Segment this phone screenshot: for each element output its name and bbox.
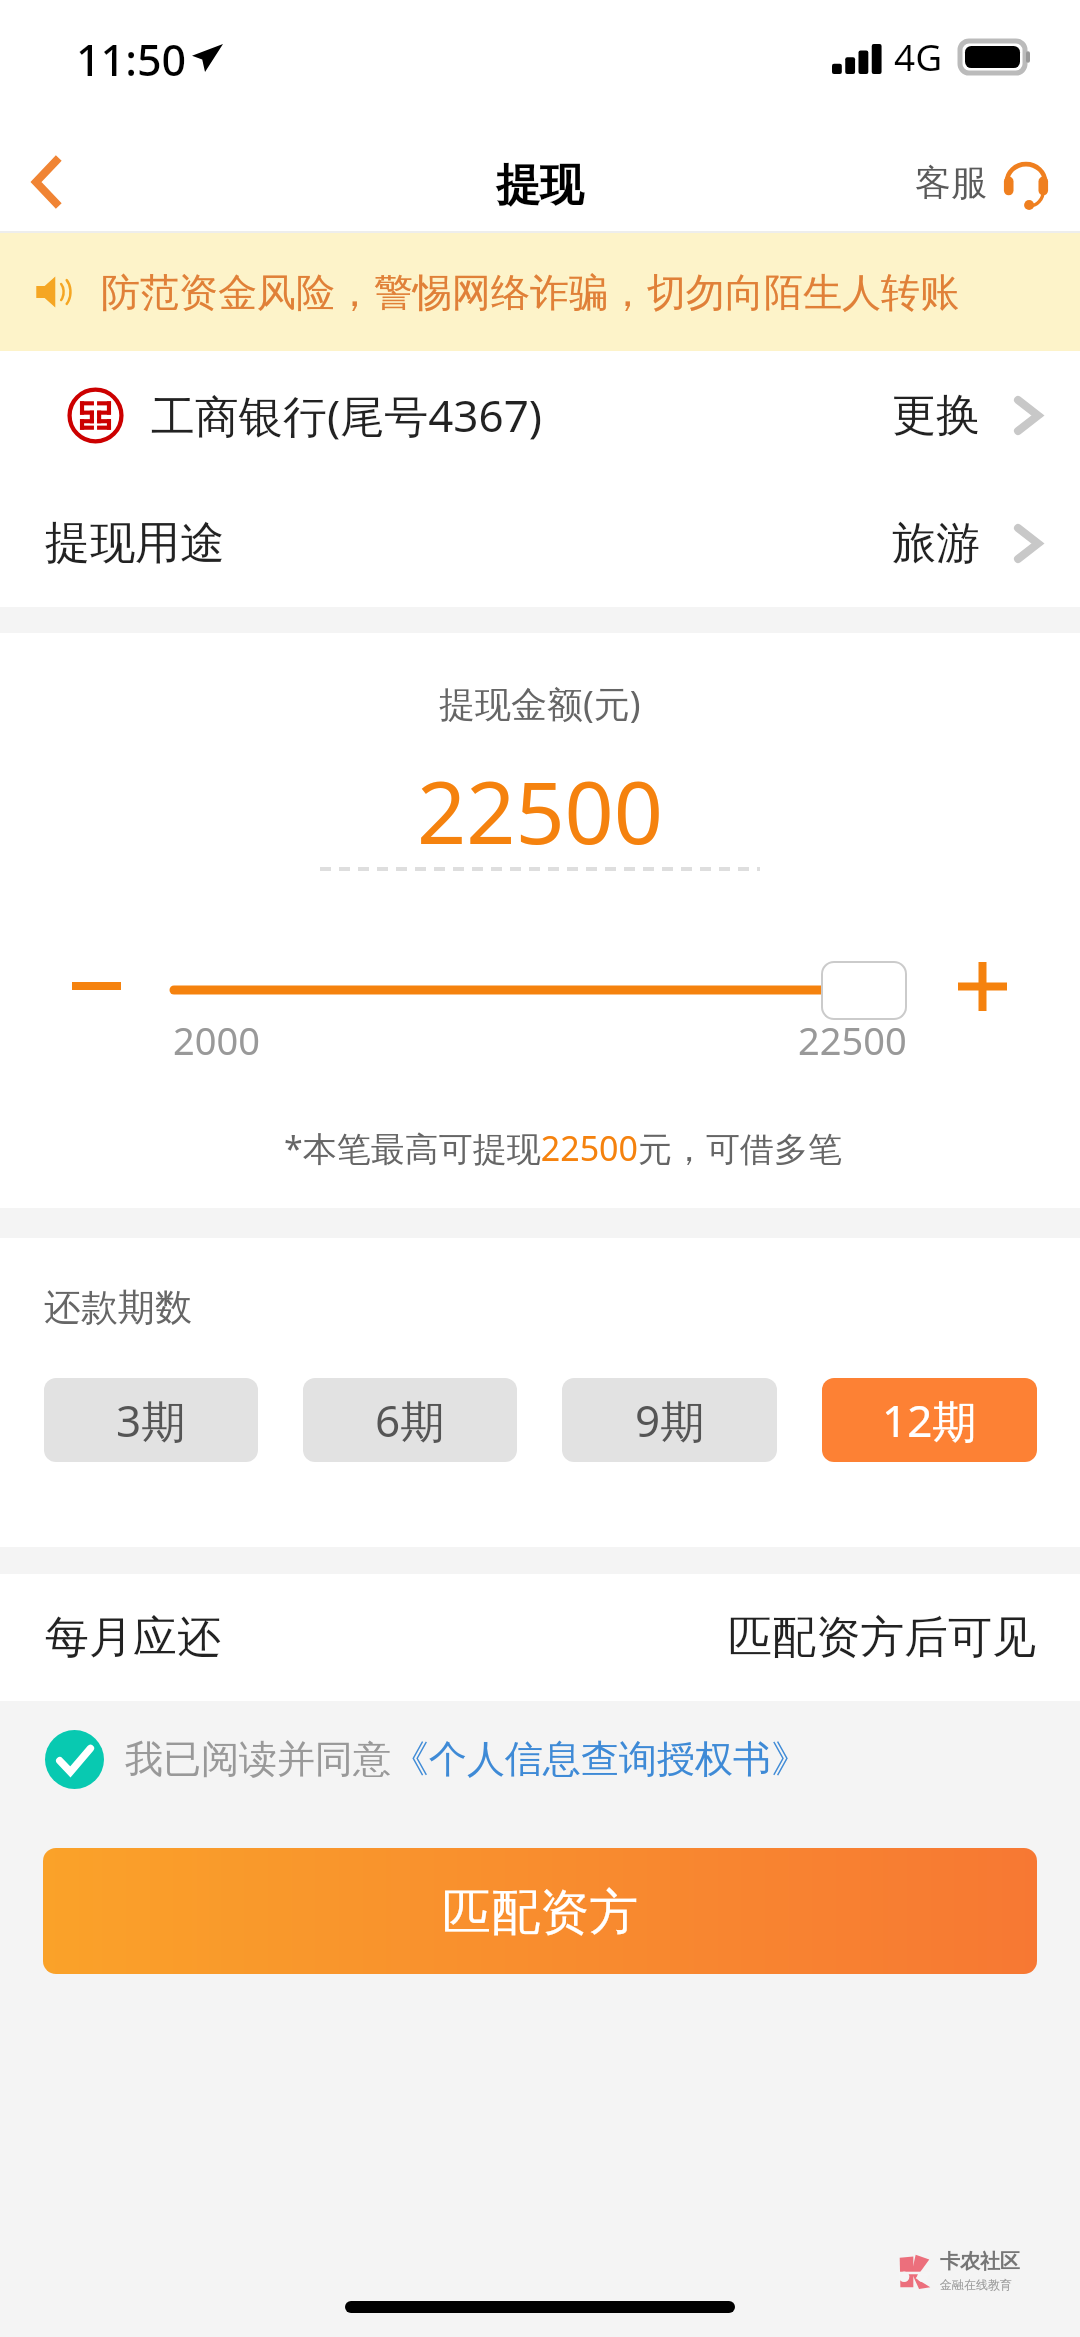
button[interactable]: 工商银行(尾号4367) <box>0 351 1080 479</box>
staticText: 更换 <box>892 388 980 443</box>
button[interactable]: Amount slider <box>174 950 822 1030</box>
button[interactable]: 12期 <box>822 1378 1037 1462</box>
staticText: 22500 <box>798 1014 907 1066</box>
staticText: *本笔最高可提现22500元，可借多笔 <box>284 1125 842 1171</box>
staticText: 卡农社区 <box>940 2249 1020 2274</box>
button[interactable]: 我已阅读并同意《个人信息查询授权书》 <box>0 1701 1080 1817</box>
staticText: 提现 <box>496 158 584 213</box>
button[interactable]: Increase amount <box>934 950 1030 1030</box>
button[interactable]: 提现用途 <box>0 479 1080 607</box>
staticText: 3期 <box>116 1390 186 1450</box>
staticText: 提现用途 <box>45 515 225 572</box>
button[interactable]: 9期 <box>562 1378 777 1462</box>
button[interactable]: Decrease amount <box>48 950 144 1030</box>
staticText: 12期 <box>882 1390 977 1450</box>
staticText: 金融在线教育 <box>940 2277 1012 2292</box>
staticText: 每月应还 <box>45 1610 221 1665</box>
staticText: 工商银行(尾号4367) <box>151 385 543 445</box>
staticText: 匹配资方后可见 <box>728 1610 1036 1665</box>
button[interactable]: 6期 <box>303 1378 517 1462</box>
staticText: 11:50 <box>76 30 187 89</box>
staticText: 提现金额(元) <box>439 679 641 728</box>
staticText: 客服 <box>915 160 987 205</box>
staticText: 我已阅读并同意《个人信息查询授权书》 <box>125 1735 809 1783</box>
staticText: 2000 <box>173 1014 260 1066</box>
button[interactable]: 客服 <box>909 146 1056 218</box>
staticText: 还款期数 <box>44 1284 192 1331</box>
button[interactable]: 匹配资方 <box>43 1848 1037 1974</box>
button[interactable]: 每月应还 <box>0 1574 1080 1701</box>
staticText: 防范资金风险，警惕网络诈骗，切勿向陌生人转账 <box>101 268 959 317</box>
button[interactable]: 3期 <box>44 1378 258 1462</box>
staticText: 6期 <box>375 1390 445 1450</box>
button[interactable]: Back <box>2 134 98 230</box>
staticText: 旅游 <box>892 516 980 571</box>
staticText: 9期 <box>635 1390 705 1450</box>
staticText: 4G <box>894 31 943 81</box>
staticText: 22500 <box>417 752 663 869</box>
staticText: 匹配资方 <box>442 1882 638 1944</box>
